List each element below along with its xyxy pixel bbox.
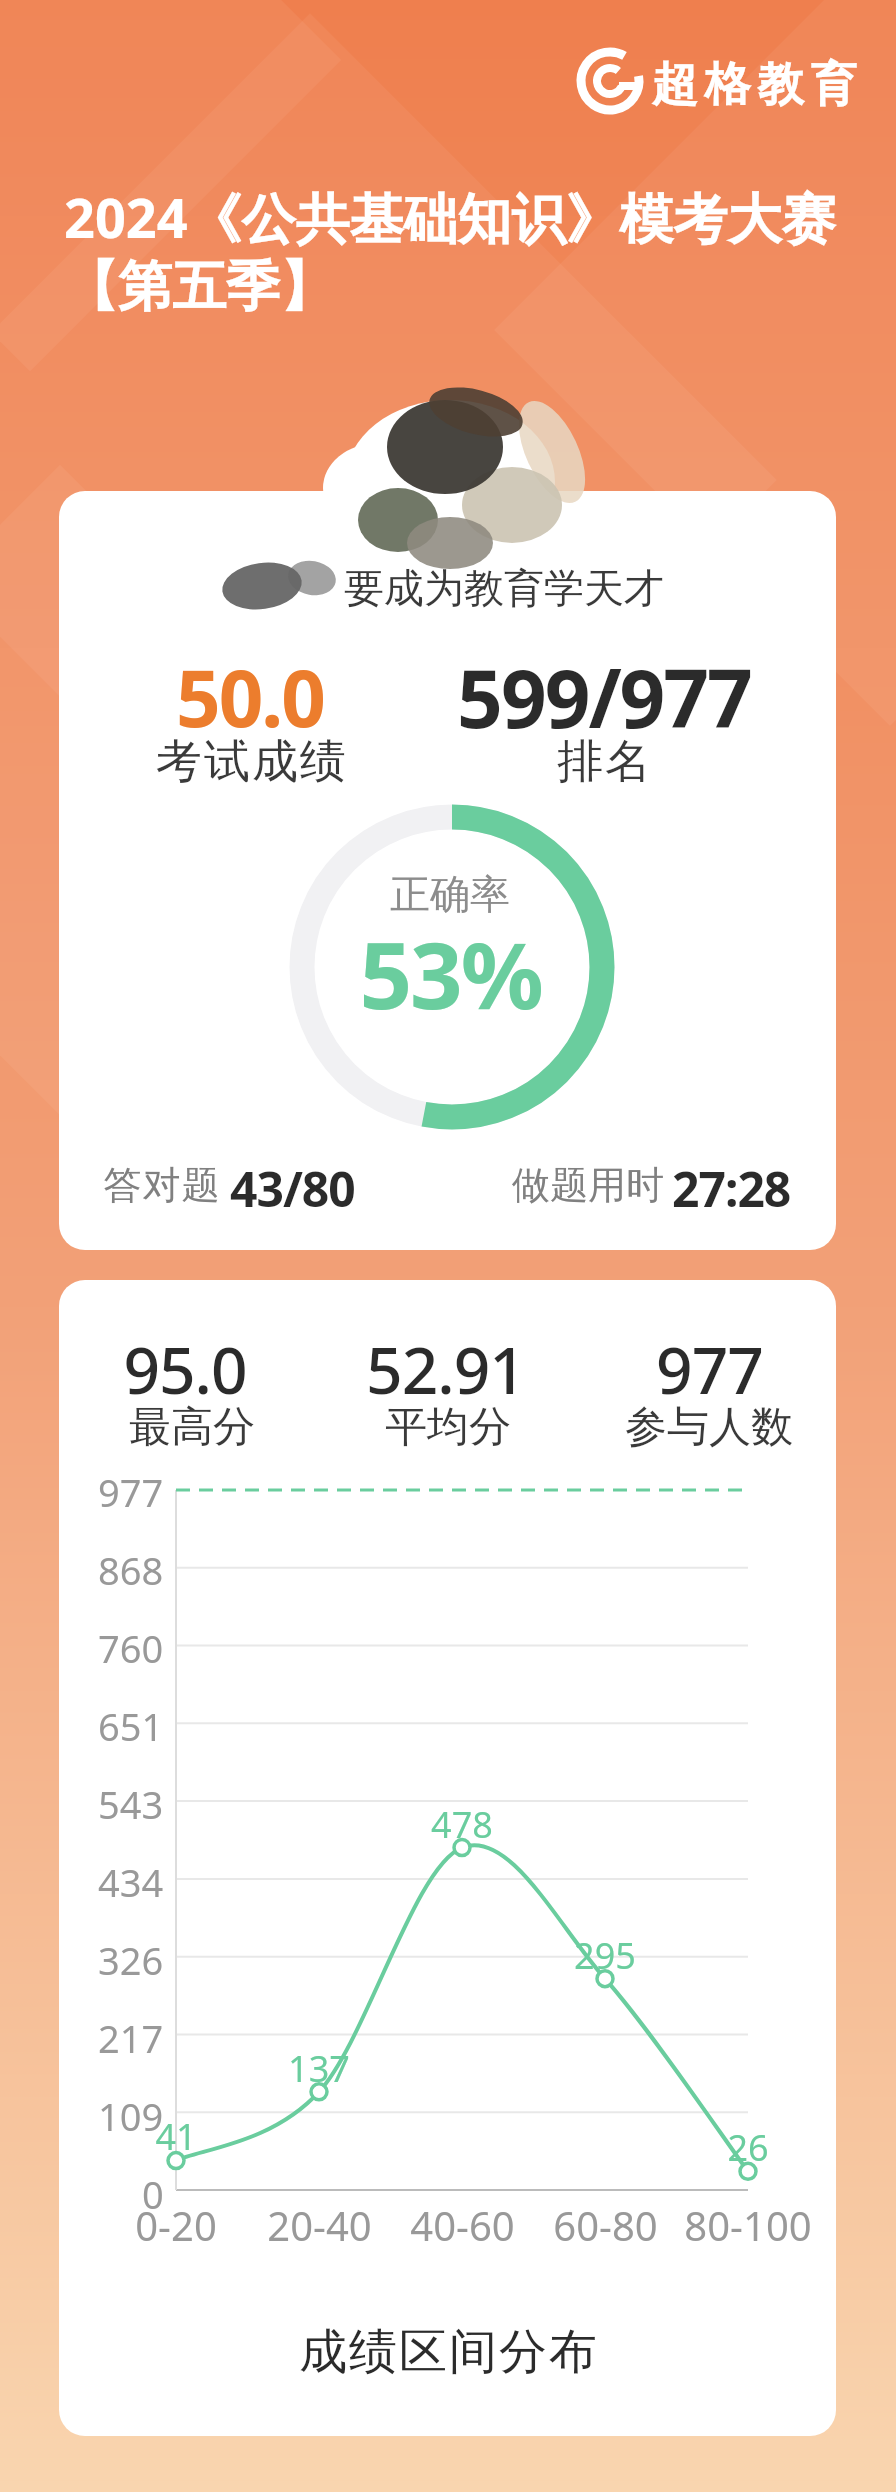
staticText: 0	[142, 2168, 164, 2216]
staticText: 50.0	[176, 644, 324, 750]
staticText: 排名	[556, 733, 652, 791]
staticText: 要成为教育学天才	[344, 563, 664, 609]
staticText: 答对题	[103, 1161, 220, 1205]
staticText: 超格教育	[648, 56, 860, 108]
staticText: 参与人数	[625, 1401, 793, 1454]
staticText: 52.91	[366, 1326, 525, 1413]
staticText: 977	[656, 1326, 763, 1413]
staticText: 434	[98, 1856, 164, 1904]
staticText: 137	[288, 2044, 350, 2093]
staticText: 295	[574, 1931, 636, 1980]
staticText: 20-40	[267, 2198, 372, 2252]
staticText: 60-80	[553, 2198, 658, 2252]
staticText: 760	[98, 1622, 164, 1670]
button[interactable]	[59, 491, 836, 1250]
staticText: 最高分	[129, 1401, 255, 1454]
staticText: 2024《公共基础知识》模考大赛 【第五季】	[64, 180, 836, 321]
staticText: 做题用时	[512, 1161, 664, 1205]
staticText: 326	[98, 1934, 164, 1982]
staticText: 599/977	[457, 642, 751, 751]
staticText: 27:28	[672, 1156, 791, 1210]
staticText: 868	[98, 1544, 164, 1592]
staticText: 41	[155, 2112, 197, 2161]
staticText: 977	[98, 1466, 164, 1514]
staticText: 478	[431, 1800, 493, 1849]
staticText: 43/80	[230, 1156, 355, 1210]
staticText: 平均分	[385, 1401, 511, 1454]
staticText: 109	[98, 2090, 164, 2138]
staticText: 217	[98, 2012, 164, 2060]
staticText: 0-20	[135, 2198, 217, 2252]
staticText: 80-100	[684, 2198, 812, 2252]
button[interactable]	[59, 1280, 836, 2436]
staticText: 543	[98, 1778, 164, 1826]
staticText: 正确率	[390, 869, 510, 919]
staticText: 53%	[359, 911, 542, 1031]
staticText: 95.0	[123, 1326, 247, 1413]
staticText: 26	[727, 2123, 769, 2172]
staticText: 40-60	[410, 2198, 515, 2252]
staticText: 考试成绩	[155, 733, 347, 791]
staticText: 成绩区间分布	[298, 2322, 598, 2382]
staticText: 651	[98, 1700, 164, 1748]
